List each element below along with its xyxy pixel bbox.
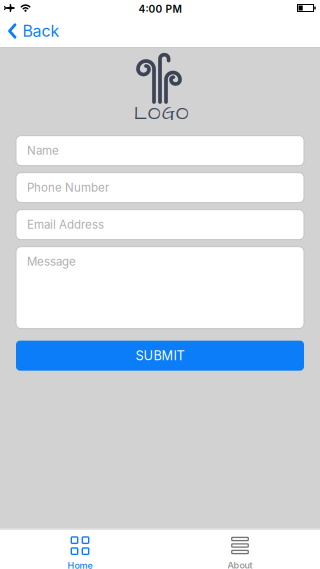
staticText: LOGO (134, 101, 189, 127)
staticText: Message (27, 255, 76, 268)
staticText: Back (22, 21, 59, 41)
button[interactable]: About (160, 529, 320, 569)
staticText: About (227, 560, 252, 569)
button[interactable]: Back (0, 24, 59, 43)
button[interactable]: Home (0, 529, 160, 569)
staticText: 4:00 PM (138, 3, 181, 15)
staticText: SUBMIT (135, 348, 184, 363)
staticText: Email Address (27, 218, 104, 232)
staticText: Phone Number (27, 181, 109, 195)
staticText: Home (67, 560, 92, 569)
button[interactable]: SUBMIT (16, 341, 304, 371)
staticText: Name (27, 144, 59, 158)
